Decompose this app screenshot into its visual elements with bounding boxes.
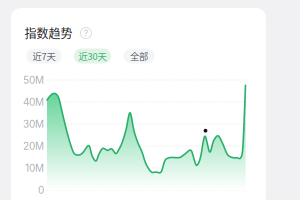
staticText: 全部 [130,49,148,63]
button[interactable]: 近30天 [74,48,111,63]
staticText: 10M [25,162,44,174]
staticText: 0 [38,184,44,196]
staticText: 40M [23,96,44,108]
staticText: 近30天 [78,49,106,63]
staticText: 50M [23,74,44,86]
button[interactable]: 近7天 [26,48,61,63]
staticText: 20M [23,140,44,152]
button[interactable]: Help [80,27,91,38]
staticText: 指数趋势 [24,24,72,42]
staticText: 近7天 [32,49,55,63]
staticText: 30M [23,118,44,130]
button[interactable]: 全部 [123,48,154,63]
staticText: ? [83,27,88,39]
